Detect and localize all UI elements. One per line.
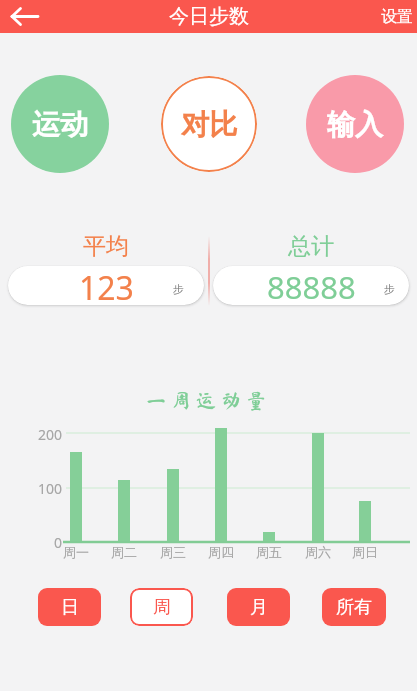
button[interactable]: 输入: [306, 75, 404, 173]
staticText: 88888: [267, 266, 356, 305]
staticText: 步: [384, 282, 395, 296]
button[interactable]: [0, 0, 50, 33]
button[interactable]: 日: [38, 588, 101, 626]
staticText: 周: [153, 596, 171, 619]
button[interactable]: 设置: [381, 7, 413, 27]
staticText: 今日步数: [169, 4, 249, 29]
staticText: 输入: [327, 107, 383, 142]
staticText: 所有: [336, 596, 372, 619]
staticText: 周三: [160, 544, 186, 560]
staticText: 周日: [352, 544, 378, 560]
staticText: 周一: [63, 544, 89, 560]
staticText: 100: [37, 479, 62, 498]
button[interactable]: 月: [227, 588, 290, 626]
button[interactable]: 周: [130, 588, 193, 626]
staticText: 总计: [288, 232, 334, 261]
staticText: 运动: [32, 107, 88, 142]
button[interactable]: 对比: [161, 76, 257, 172]
staticText: 平均: [83, 232, 129, 261]
staticText: 周六: [305, 544, 331, 560]
button[interactable]: 所有: [322, 588, 386, 626]
staticText: 123: [79, 266, 134, 305]
staticText: 周五: [256, 544, 282, 560]
staticText: 设置: [381, 7, 413, 27]
staticText: 月: [250, 596, 268, 619]
staticText: 200: [37, 425, 62, 444]
staticText: 日: [61, 596, 79, 619]
staticText: 步: [173, 282, 184, 296]
staticText: 一周运动量: [146, 390, 271, 410]
staticText: 周四: [208, 544, 234, 560]
staticText: 0: [53, 533, 62, 552]
staticText: 周二: [111, 544, 137, 560]
staticText: 对比: [181, 107, 237, 142]
button[interactable]: 运动: [11, 75, 109, 173]
